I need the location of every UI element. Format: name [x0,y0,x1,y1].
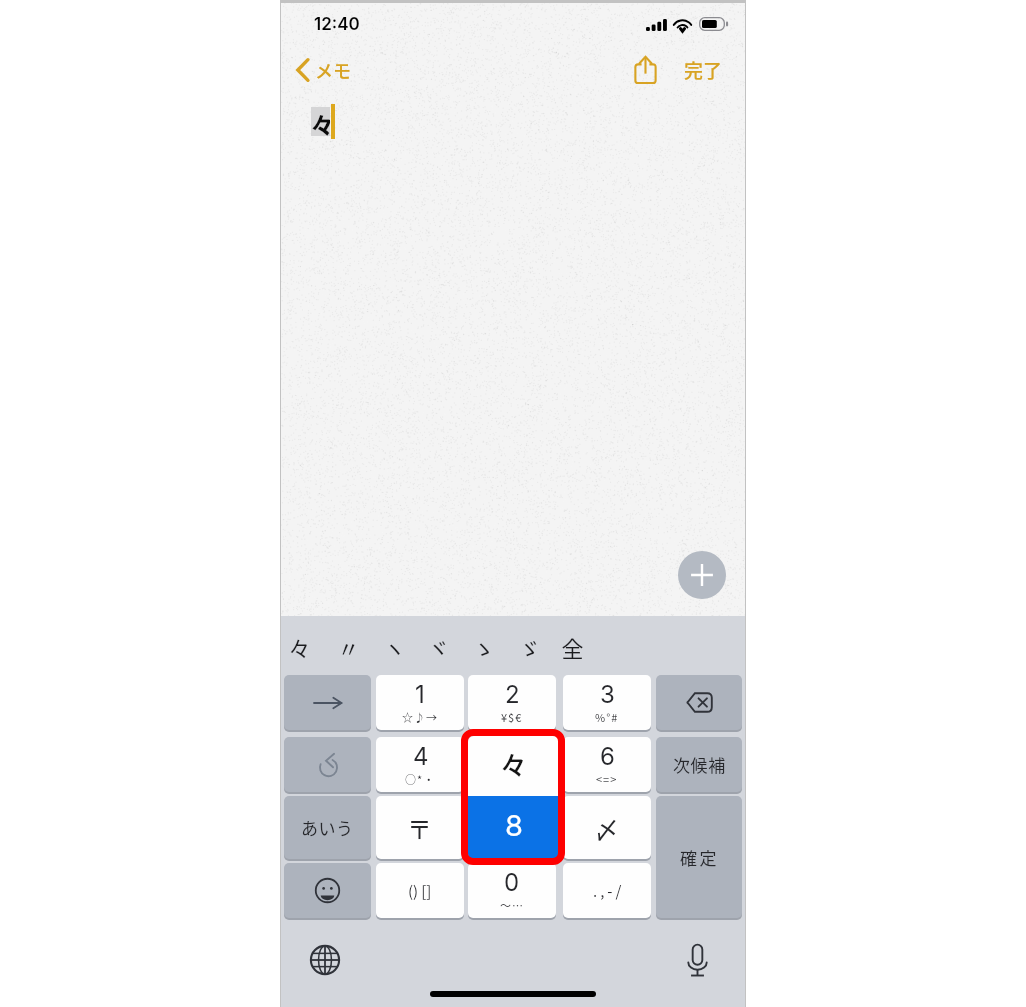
button[interactable]: ゞ [511,627,547,667]
staticText: メモ [315,57,351,83]
staticText: %°# [595,709,619,725]
button[interactable]: . , - / [563,863,651,918]
button[interactable]: 0 [468,863,556,918]
other: Move cursor right [314,696,342,710]
button[interactable]: あいう [284,796,371,859]
button[interactable]: Add attachment [678,551,726,599]
staticText: 〆 [594,810,620,846]
staticText: 々 [288,631,311,663]
button[interactable]: () [] [376,863,464,918]
staticText: ☆♪→ [402,709,438,725]
button[interactable]: 完了 [684,56,723,84]
staticText: 全 [561,631,584,663]
button[interactable]: ヾ [420,627,456,667]
staticText: 12:40 [314,14,360,35]
button[interactable]: Move cursor right [284,675,371,730]
staticText: ゝ [472,631,495,663]
staticText: ヾ [427,631,450,663]
staticText: 8 [505,808,523,843]
staticText: () [] [408,880,432,902]
button[interactable]: 2 [468,675,556,730]
button[interactable]: 3 [563,675,651,730]
button[interactable]: 6 [563,737,651,792]
staticText: 2 [505,680,520,709]
button[interactable]: Emoji [284,863,371,918]
button[interactable]: 次候補 [656,737,742,792]
staticText: ゞ [518,631,541,663]
button[interactable]: メモ [296,57,351,83]
button[interactable]: 々 [468,736,559,860]
staticText: <=> [596,771,618,787]
button[interactable]: 1 [376,675,464,730]
button[interactable]: 4 [376,737,464,792]
staticText: 々 [500,745,527,784]
staticText: 3 [600,680,615,709]
staticText: 4 [413,742,429,771]
button[interactable]: 々 [281,627,317,667]
staticText: あいう [301,815,354,840]
staticText: ○*・ [405,771,436,787]
staticText: 完了 [684,56,723,84]
button[interactable]: 〆 [563,796,651,859]
staticText: 々 [311,107,330,136]
button[interactable]: Dictation [679,942,715,978]
button[interactable]: Backspace [656,675,742,730]
other: Undo [315,752,341,778]
staticText: 0 [504,868,520,897]
staticText: 6 [600,742,615,771]
staticText: 確定 [680,845,719,870]
button[interactable]: 〃 [330,627,366,667]
button[interactable]: Share [634,56,657,84]
staticText: 次候補 [673,752,726,777]
staticText: 1 [415,680,425,709]
button[interactable]: 全 [554,627,590,667]
button[interactable]: 〒 [376,796,464,859]
button[interactable]: ヽ [376,627,412,667]
other: Backspace [686,692,713,713]
staticText: ¥$€ [501,709,523,725]
button[interactable]: 確定 [656,796,742,918]
button[interactable]: ゝ [465,627,501,667]
other: Emoji [315,878,340,903]
staticText: 〜… [500,897,524,913]
staticText: . , - / [593,880,622,902]
staticText: ヽ [383,631,406,663]
button[interactable]: Undo [284,737,371,792]
staticText: 〃 [337,631,360,663]
button[interactable]: Switch keyboard [307,942,343,978]
staticText: 〒 [407,810,433,846]
